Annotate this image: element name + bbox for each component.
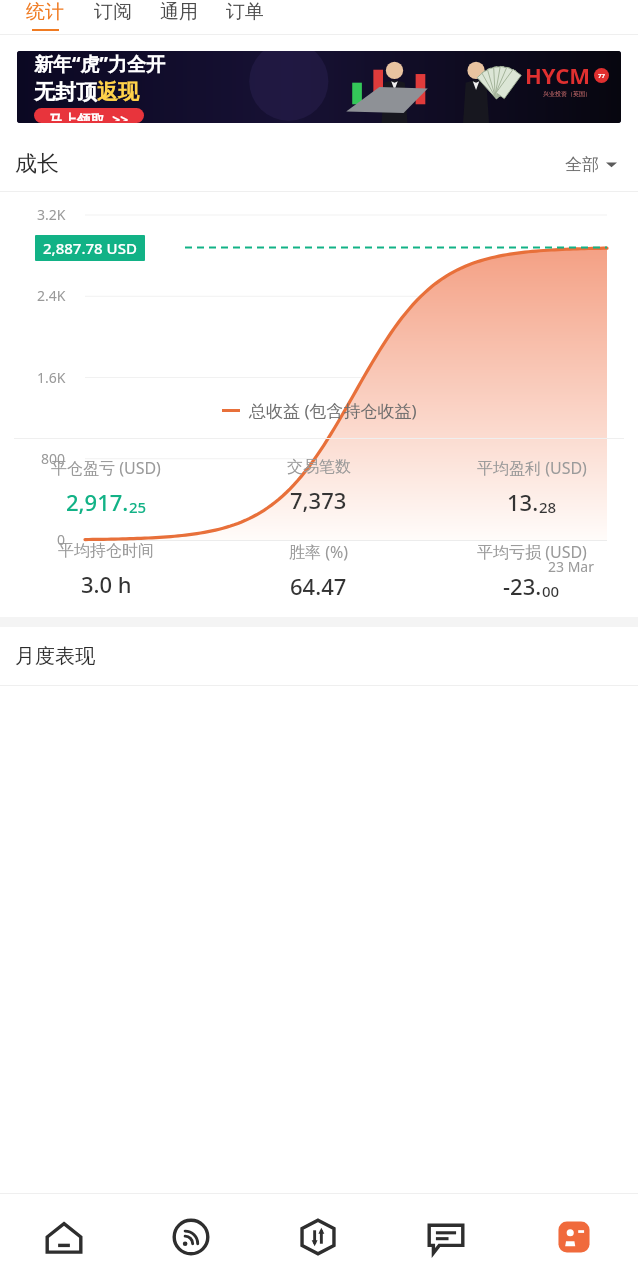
staticText: 64.47	[290, 571, 347, 601]
staticText: HYCM	[525, 60, 591, 90]
staticText: 平均亏损 (USD)	[477, 541, 587, 563]
staticText: 订单	[226, 0, 264, 24]
button[interactable]: 全部	[559, 148, 623, 181]
staticText: 全部	[565, 154, 599, 175]
staticText: 13.	[507, 487, 539, 517]
staticText: 77	[598, 72, 605, 80]
button[interactable]: Signals	[127, 1194, 254, 1280]
staticText: 订阅	[94, 0, 132, 24]
button[interactable]: Messages	[382, 1194, 510, 1280]
staticText: 平均盈利 (USD)	[477, 457, 587, 479]
button[interactable]: Trade	[254, 1194, 382, 1280]
staticText: 新年“虎”力全开	[34, 51, 165, 77]
staticText: 统计	[26, 0, 64, 24]
button[interactable]: Home	[0, 1194, 127, 1280]
staticText: 3.0 h	[81, 569, 132, 599]
staticText: 成长	[15, 150, 59, 178]
staticText: 胜率 (%)	[289, 541, 349, 563]
staticText: 平仓盈亏 (USD)	[51, 457, 161, 479]
staticText: -23.	[503, 571, 542, 601]
staticText: 28	[539, 497, 557, 517]
staticText: 0	[57, 530, 66, 549]
button[interactable]: 订阅	[94, 0, 132, 29]
staticText: 平均持仓时间	[58, 541, 154, 561]
staticText: 1.6K	[37, 368, 66, 387]
button[interactable]: 订单	[226, 0, 264, 29]
staticText: 3.2K	[37, 205, 66, 224]
staticText: 00	[542, 581, 560, 601]
button[interactable]: 统计	[26, 0, 64, 31]
staticText: 25	[129, 497, 147, 517]
button[interactable]: 通用	[160, 0, 198, 29]
staticText: 月度表现	[15, 644, 95, 669]
button[interactable]: 新年“虎”力全开	[17, 51, 621, 123]
staticText: 交易笔数	[287, 457, 351, 477]
staticText: 2,917.	[66, 487, 129, 517]
staticText: 无封顶	[34, 79, 97, 105]
staticText: 总收益 (包含持仓收益)	[249, 399, 417, 422]
staticText: 800	[41, 449, 66, 468]
staticText: 2.4K	[37, 286, 66, 305]
staticText: 马上领取 >>	[49, 110, 129, 121]
staticText: 返现	[97, 79, 139, 105]
staticText: 7,373	[290, 485, 347, 515]
staticText: 通用	[160, 0, 198, 24]
button[interactable]: Profile	[510, 1194, 638, 1280]
staticText: 23 Mar	[548, 557, 594, 576]
staticText: 兴业投资（英国）	[543, 90, 591, 98]
staticText: 2,887.78 USD	[43, 238, 137, 258]
